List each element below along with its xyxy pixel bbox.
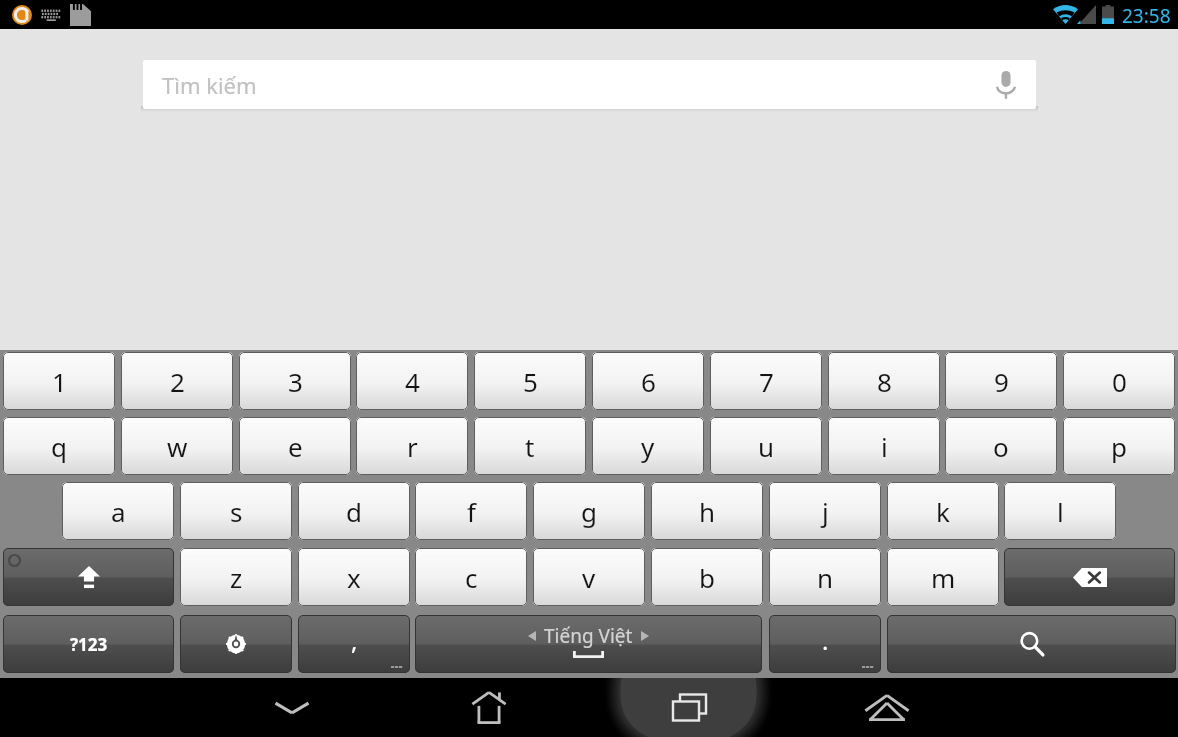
staticText: n (817, 560, 834, 595)
staticText: b (699, 560, 715, 595)
staticText: 0 (1112, 364, 1127, 399)
staticText: . (822, 624, 829, 657)
staticText: Tìm kiếm (162, 70, 257, 100)
button[interactable]: 2 (121, 352, 233, 410)
staticText: h (699, 494, 716, 529)
button[interactable]: y (592, 417, 704, 475)
button[interactable]: c (415, 548, 527, 606)
button[interactable]: Recents (639, 678, 739, 737)
button[interactable]: 6 (592, 352, 704, 410)
button[interactable]: m (887, 548, 999, 606)
staticText: o (993, 429, 1009, 464)
button[interactable]: Tiếng Việt (415, 615, 762, 673)
staticText: 23:58 (1122, 3, 1171, 29)
staticText: e (288, 429, 303, 464)
button[interactable]: 4 (356, 352, 468, 410)
staticText: f (467, 494, 476, 529)
button[interactable]: d (298, 482, 410, 540)
button[interactable]: Search (887, 615, 1176, 673)
staticText: 4 (405, 364, 420, 399)
button[interactable]: e (239, 417, 351, 475)
staticText: ?123 (70, 633, 108, 656)
button[interactable]: h (651, 482, 763, 540)
staticText: q (51, 429, 67, 464)
button[interactable]: Hide keyboard (242, 678, 342, 737)
button[interactable]: 5 (474, 352, 586, 410)
button[interactable]: g (533, 482, 645, 540)
button[interactable]: , (298, 615, 410, 673)
button[interactable]: l (1004, 482, 1116, 540)
staticText: l (1057, 494, 1064, 529)
staticText: 5 (523, 364, 538, 399)
button[interactable]: Voice search (976, 60, 1036, 109)
staticText: g (581, 494, 597, 529)
button[interactable]: 3 (239, 352, 351, 410)
staticText: 2 (170, 364, 185, 399)
button[interactable]: r (356, 417, 468, 475)
staticText: r (407, 429, 418, 464)
button[interactable]: i (828, 417, 940, 475)
staticText: m (931, 560, 956, 595)
button[interactable]: t (474, 417, 586, 475)
button[interactable]: Backspace (1004, 548, 1175, 606)
staticText: , (351, 624, 358, 657)
staticText: d (346, 494, 362, 529)
button[interactable]: Tìm kiếm (143, 60, 1036, 109)
staticText: x (347, 560, 361, 595)
button[interactable]: s (180, 482, 292, 540)
button[interactable]: 8 (828, 352, 940, 410)
staticText: v (582, 560, 596, 595)
staticText: i (881, 429, 888, 464)
button[interactable]: u (710, 417, 822, 475)
button[interactable]: 9 (945, 352, 1057, 410)
staticText: 1 (52, 364, 67, 399)
button[interactable]: ?123 (3, 615, 174, 673)
button[interactable]: b (651, 548, 763, 606)
button[interactable]: n (769, 548, 881, 606)
staticText: Tiếng Việt (544, 623, 633, 649)
staticText: c (465, 560, 478, 595)
button[interactable]: . (769, 615, 881, 673)
button[interactable]: q (3, 417, 115, 475)
staticText: j (822, 494, 829, 529)
staticText: z (230, 560, 243, 595)
button[interactable]: 1 (3, 352, 115, 410)
button[interactable]: w (121, 417, 233, 475)
button[interactable]: x (298, 548, 410, 606)
staticText: t (525, 429, 535, 464)
staticText: 9 (994, 364, 1009, 399)
button[interactable]: Settings (180, 615, 292, 673)
button[interactable]: 7 (710, 352, 822, 410)
button[interactable]: j (769, 482, 881, 540)
staticText: a (111, 494, 126, 529)
staticText: s (230, 494, 243, 529)
staticText: 7 (759, 364, 774, 399)
staticText: 8 (877, 364, 892, 399)
button[interactable]: p (1063, 417, 1175, 475)
staticText: w (167, 429, 188, 464)
button[interactable]: z (180, 548, 292, 606)
button[interactable]: a (62, 482, 174, 540)
button[interactable]: Menu (837, 678, 937, 737)
staticText: u (758, 429, 775, 464)
staticText: 6 (641, 364, 656, 399)
staticText: 3 (288, 364, 303, 399)
button[interactable]: o (945, 417, 1057, 475)
button[interactable]: Shift (3, 548, 174, 606)
staticText: y (641, 429, 655, 464)
button[interactable]: k (887, 482, 999, 540)
button[interactable]: Home (439, 678, 539, 737)
button[interactable]: f (415, 482, 527, 540)
staticText: p (1111, 429, 1127, 464)
button[interactable]: 0 (1063, 352, 1175, 410)
button[interactable]: v (533, 548, 645, 606)
staticText: k (936, 494, 950, 529)
